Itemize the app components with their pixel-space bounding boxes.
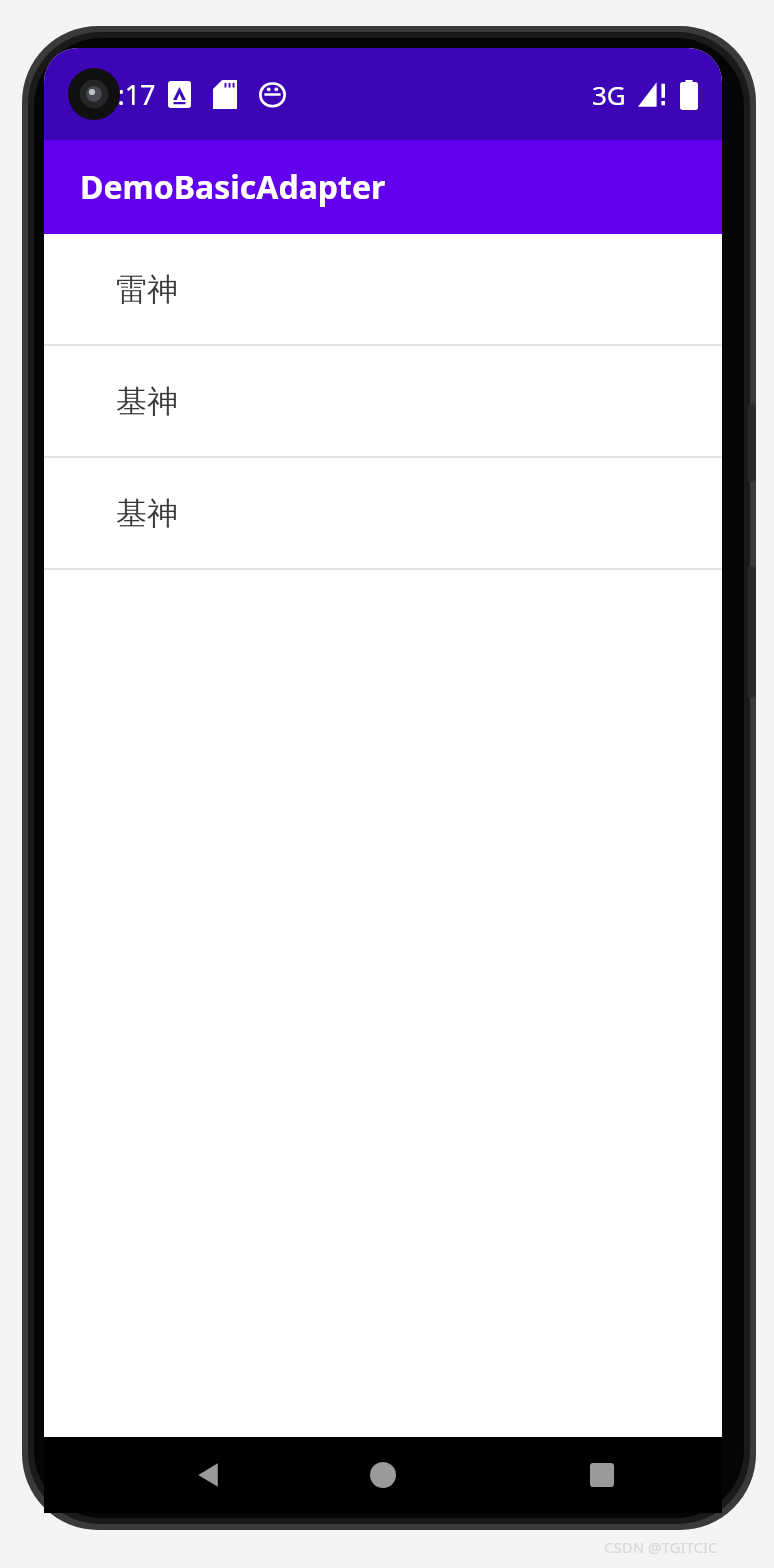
staticText: 雷神: [116, 270, 178, 309]
button[interactable]: Home: [351, 1443, 415, 1507]
button[interactable]: 雷神: [44, 234, 722, 346]
button[interactable]: Back: [176, 1443, 240, 1507]
button[interactable]: Recent apps: [570, 1443, 634, 1507]
staticText: CSDN @TGITCIC: [604, 1537, 718, 1557]
staticText: 基神: [116, 382, 178, 421]
staticText: 2:17: [102, 76, 156, 113]
button[interactable]: 基神: [44, 458, 722, 570]
staticText: DemoBasicAdapter: [80, 165, 386, 209]
staticText: 基神: [116, 494, 178, 533]
button[interactable]: 基神: [44, 346, 722, 458]
staticText: 3G: [592, 77, 626, 112]
